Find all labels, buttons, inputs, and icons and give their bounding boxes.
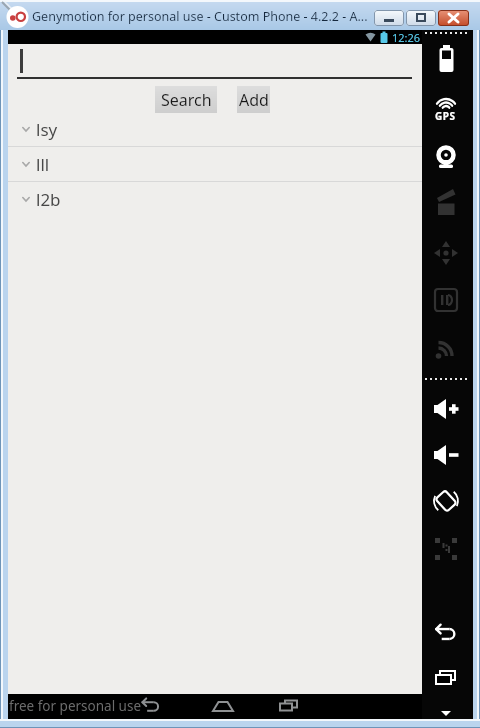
button[interactable] xyxy=(374,10,404,26)
staticText: l2b xyxy=(36,188,61,211)
button[interactable] xyxy=(132,694,176,719)
button[interactable] xyxy=(426,96,468,136)
button[interactable] xyxy=(426,439,468,479)
staticText: lll xyxy=(36,153,50,176)
button[interactable] xyxy=(426,618,468,658)
button[interactable] xyxy=(426,190,468,230)
staticText: 12:26 xyxy=(392,30,421,44)
button[interactable] xyxy=(426,284,468,324)
staticText: lsy xyxy=(36,118,58,141)
button[interactable]: l2b xyxy=(8,182,422,216)
button[interactable] xyxy=(426,332,468,372)
staticText: Search xyxy=(161,89,212,111)
button[interactable] xyxy=(259,694,303,719)
button[interactable]: Add xyxy=(237,86,270,113)
button[interactable] xyxy=(438,10,469,26)
button[interactable] xyxy=(406,10,436,26)
button[interactable] xyxy=(426,393,468,433)
button[interactable] xyxy=(426,142,468,182)
staticText: free for personal use xyxy=(9,697,142,715)
staticText: Genymotion for personal use - Custom Pho… xyxy=(32,8,368,25)
button[interactable] xyxy=(426,533,468,573)
staticText: GPS xyxy=(435,109,456,123)
button[interactable] xyxy=(14,46,414,80)
button[interactable] xyxy=(426,237,468,277)
button[interactable] xyxy=(426,46,468,86)
button[interactable]: lll xyxy=(8,147,422,181)
button[interactable]: lsy xyxy=(8,112,422,146)
button[interactable]: Search xyxy=(155,86,217,113)
button[interactable] xyxy=(426,664,468,704)
staticText: Add xyxy=(239,89,269,111)
button[interactable] xyxy=(193,694,237,719)
button[interactable] xyxy=(426,485,468,525)
